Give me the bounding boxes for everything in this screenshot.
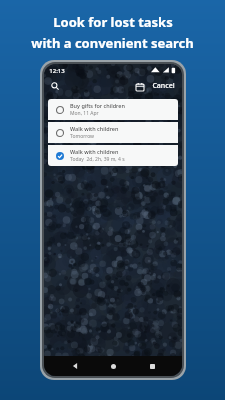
button[interactable]: Mark complete — [48, 99, 178, 120]
button[interactable]: Mark incomplete — [54, 150, 65, 161]
staticText: Walk with children — [70, 148, 119, 155]
button[interactable]: Mark incomplete — [48, 145, 178, 166]
staticText: Tomorrow — [70, 133, 95, 140]
button[interactable]: Pick date — [133, 80, 146, 93]
button[interactable]: Mark complete — [54, 127, 65, 138]
staticText: Today 2d, 2h, 39 m, 4 s — [70, 156, 125, 163]
button[interactable]: Recent apps — [144, 358, 160, 374]
button[interactable]: Search — [49, 80, 61, 92]
staticText: Mon, 11 Apr — [70, 110, 99, 117]
button[interactable]: Mark complete — [48, 122, 178, 143]
button[interactable]: Cancel — [150, 80, 177, 92]
staticText: 12:13 — [49, 67, 65, 75]
staticText: Buy gifts for children — [70, 102, 125, 109]
staticText: Cancel — [152, 81, 175, 91]
button[interactable]: Back — [67, 358, 83, 374]
button[interactable]: Mark complete — [54, 104, 65, 115]
staticText: Look for lost tasks — [53, 13, 173, 31]
staticText: with a convenient search — [31, 34, 194, 52]
button[interactable]: Home — [105, 358, 121, 374]
staticText: Walk with children — [70, 125, 119, 132]
